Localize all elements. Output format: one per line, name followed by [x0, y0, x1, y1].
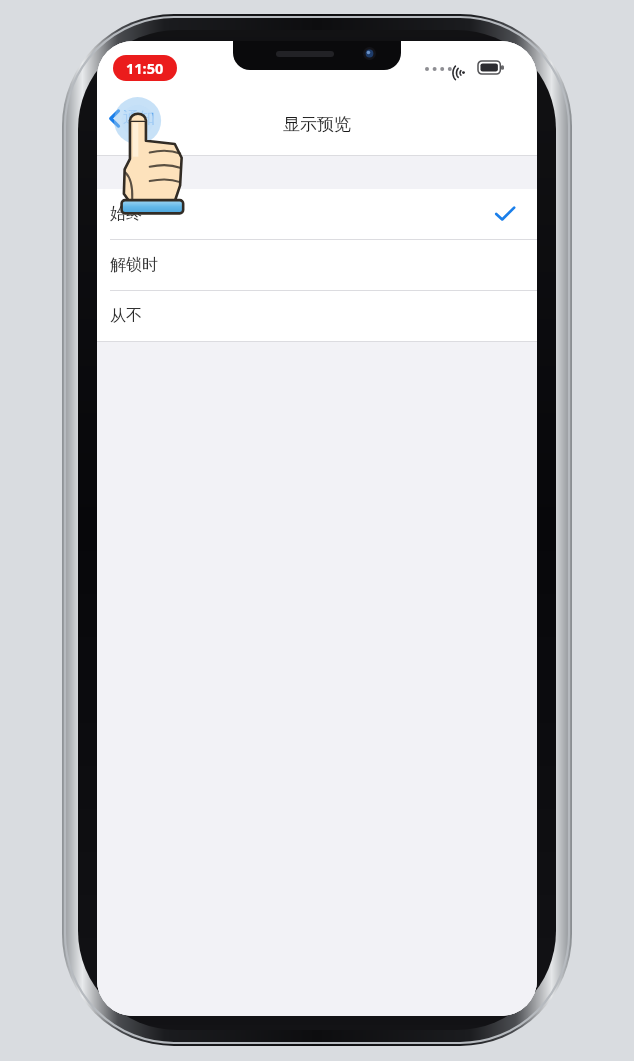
staticText: 从不 [110, 306, 142, 326]
staticText: 11:50 [126, 58, 164, 78]
button[interactable]: 始终 [97, 189, 537, 239]
staticText: 显示预览 [283, 114, 351, 135]
button[interactable]: 通知 [103, 104, 161, 132]
staticText: 始终 [110, 204, 142, 224]
button[interactable]: 解锁时 [97, 240, 537, 290]
staticText: 解锁时 [110, 255, 158, 275]
other: Tap pointer [114, 109, 190, 215]
button[interactable]: 从不 [97, 291, 537, 341]
staticText: 通知 [123, 108, 155, 128]
